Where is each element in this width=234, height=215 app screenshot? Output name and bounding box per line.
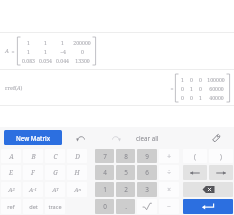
- staticText: B: [31, 152, 36, 161]
- button[interactable]: ref: [1, 199, 21, 214]
- staticText: C: [53, 152, 58, 161]
- staticText: 1: [27, 48, 30, 55]
- staticText: 1: [190, 85, 193, 92]
- staticText: E: [9, 168, 13, 177]
- button[interactable]: 9: [137, 149, 157, 163]
- staticText: 0: [199, 85, 202, 92]
- staticText: 1: [61, 39, 64, 46]
- button[interactable]: G: [45, 165, 65, 180]
- staticText: 0: [181, 94, 184, 101]
- staticText: (: [194, 152, 196, 161]
- staticText: 0: [190, 94, 193, 101]
- button[interactable]: trace: [45, 199, 65, 214]
- button[interactable]: Enter: [183, 199, 233, 214]
- button[interactable]: Backspace: [183, 182, 233, 197]
- button[interactable]: clear all: [136, 128, 159, 148]
- staticText: ): [220, 152, 222, 161]
- staticText: det: [29, 203, 38, 211]
- staticText: −4: [60, 48, 66, 55]
- button[interactable]: 0: [95, 199, 114, 214]
- button[interactable]: New Matrix: [4, 130, 62, 145]
- button[interactable]: Redo: [106, 128, 126, 148]
- staticText: rref(A): [5, 84, 23, 91]
- staticText: H: [74, 168, 80, 177]
- button[interactable]: 6: [137, 165, 157, 180]
- button[interactable]: (: [183, 149, 207, 163]
- button[interactable]: A−1: [23, 182, 43, 197]
- staticText: An: [74, 186, 81, 194]
- staticText: A−1: [29, 186, 37, 194]
- button[interactable]: B: [23, 149, 43, 163]
- button[interactable]: Undo: [70, 128, 90, 148]
- staticText: 0: [181, 85, 184, 92]
- button[interactable]: 1: [95, 182, 114, 197]
- staticText: 1: [44, 39, 47, 46]
- staticText: trace: [48, 203, 62, 211]
- staticText: 8: [124, 152, 128, 161]
- staticText: .: [125, 202, 127, 211]
- staticText: 100000: [207, 76, 225, 83]
- staticText: +: [167, 152, 171, 161]
- staticText: 1: [103, 185, 107, 194]
- button[interactable]: 3: [137, 182, 157, 197]
- staticText: 0: [199, 76, 202, 83]
- staticText: New Matrix: [16, 134, 51, 142]
- staticText: ×: [167, 185, 171, 194]
- staticText: 5: [124, 168, 128, 177]
- staticText: A: [5, 47, 9, 55]
- staticText: A2: [8, 186, 15, 194]
- staticText: 1: [44, 48, 47, 55]
- staticText: ÷: [167, 168, 171, 177]
- button[interactable]: ×: [159, 182, 179, 197]
- button[interactable]: ÷: [159, 165, 179, 180]
- staticText: ref: [7, 203, 15, 211]
- staticText: A: [9, 152, 14, 161]
- button[interactable]: C: [45, 149, 65, 163]
- button[interactable]: Square root: [137, 199, 157, 214]
- staticText: AT: [52, 186, 59, 194]
- staticText: 6: [145, 168, 149, 177]
- staticText: G: [53, 168, 58, 177]
- staticText: clear all: [136, 134, 159, 142]
- staticText: 2: [124, 185, 128, 194]
- button[interactable]: Settings: [206, 128, 226, 148]
- button[interactable]: A2: [1, 182, 21, 197]
- staticText: 0: [190, 76, 193, 83]
- staticText: 0.044: [56, 57, 69, 64]
- staticText: 0: [103, 202, 107, 211]
- button[interactable]: 5: [116, 165, 135, 180]
- staticText: 40000: [209, 94, 224, 101]
- button[interactable]: D: [67, 149, 87, 163]
- button[interactable]: Move right: [209, 165, 233, 180]
- staticText: −: [167, 202, 171, 211]
- staticText: 7: [103, 152, 107, 161]
- button[interactable]: H: [67, 165, 87, 180]
- button[interactable]: 2: [116, 182, 135, 197]
- staticText: 1: [181, 76, 184, 83]
- button[interactable]: det: [23, 199, 43, 214]
- staticText: 60000: [209, 85, 224, 92]
- button[interactable]: ): [209, 149, 233, 163]
- staticText: =: [11, 48, 15, 55]
- staticText: F: [31, 168, 35, 177]
- staticText: =: [170, 85, 174, 92]
- button[interactable]: Move left: [183, 165, 207, 180]
- staticText: 9: [145, 152, 149, 161]
- staticText: 0: [81, 48, 84, 55]
- button[interactable]: E: [1, 165, 21, 180]
- staticText: 200000: [73, 39, 91, 46]
- button[interactable]: 8: [116, 149, 135, 163]
- button[interactable]: AT: [45, 182, 65, 197]
- button[interactable]: 4: [95, 165, 114, 180]
- staticText: 13300: [75, 57, 90, 64]
- staticText: 0.054: [39, 57, 52, 64]
- button[interactable]: A: [1, 149, 21, 163]
- staticText: 3: [145, 185, 149, 194]
- button[interactable]: −: [159, 199, 179, 214]
- button[interactable]: 7: [95, 149, 114, 163]
- button[interactable]: F: [23, 165, 43, 180]
- button[interactable]: An: [67, 182, 87, 197]
- button[interactable]: +: [159, 149, 179, 163]
- staticText: 0.083: [22, 57, 35, 64]
